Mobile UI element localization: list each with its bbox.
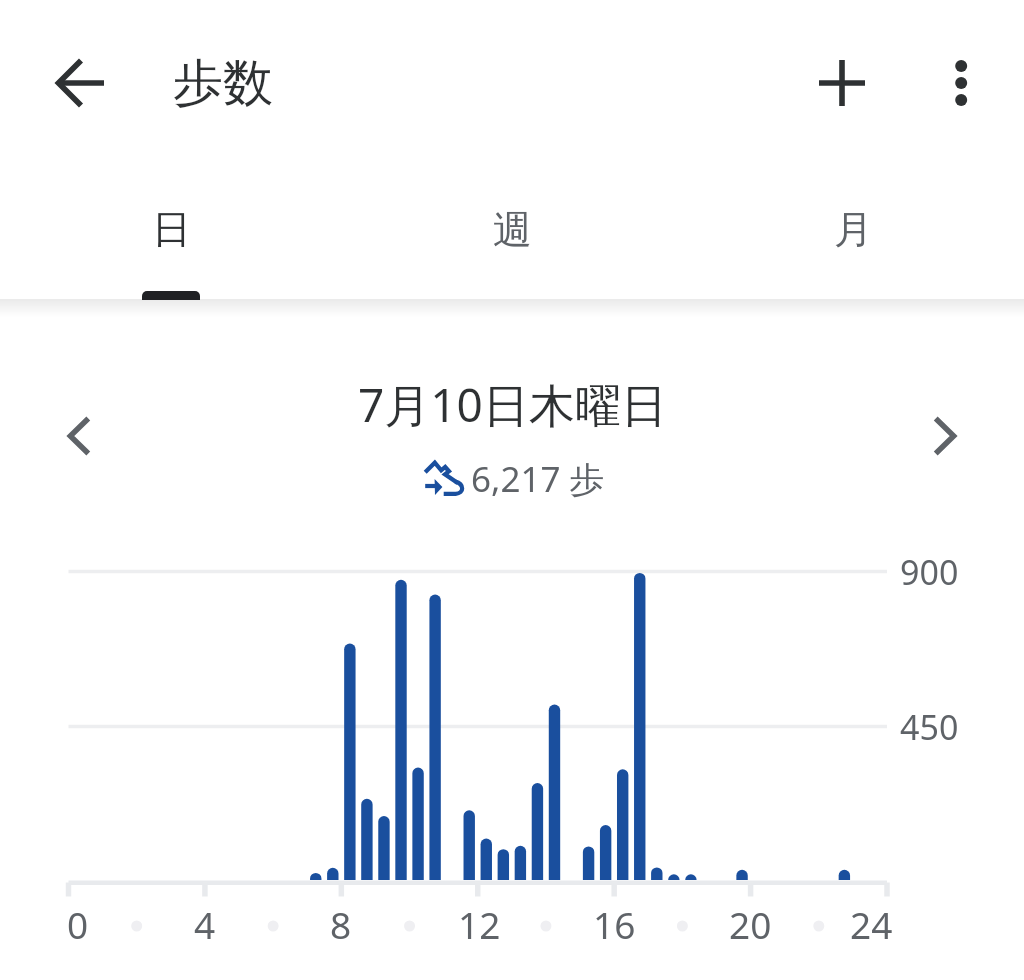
staticText: 週	[493, 205, 532, 254]
staticText: 日	[152, 205, 191, 254]
staticText: 450	[900, 704, 959, 750]
button[interactable]: 月	[683, 160, 1024, 300]
staticText: 月	[834, 205, 873, 254]
button[interactable]: Next day	[908, 400, 980, 472]
staticText: 16	[593, 899, 636, 949]
staticText: 20	[729, 899, 772, 949]
button[interactable]: 日	[0, 160, 342, 300]
staticText: 歩数	[173, 52, 273, 115]
button[interactable]: 週	[342, 160, 683, 300]
staticText: 12	[458, 899, 501, 949]
button[interactable]: Previous day	[44, 400, 116, 472]
staticText: 6,217 歩	[471, 455, 605, 503]
button[interactable]: More options	[928, 50, 994, 116]
staticText: 7月10日木曜日	[358, 373, 667, 436]
staticText: 8	[330, 899, 352, 949]
staticText: 900	[900, 549, 959, 595]
staticText: 4	[194, 899, 216, 949]
button[interactable]: Back	[48, 50, 114, 116]
button[interactable]: Add	[809, 50, 875, 116]
staticText: 0	[67, 899, 89, 949]
staticText: 24	[850, 899, 893, 949]
